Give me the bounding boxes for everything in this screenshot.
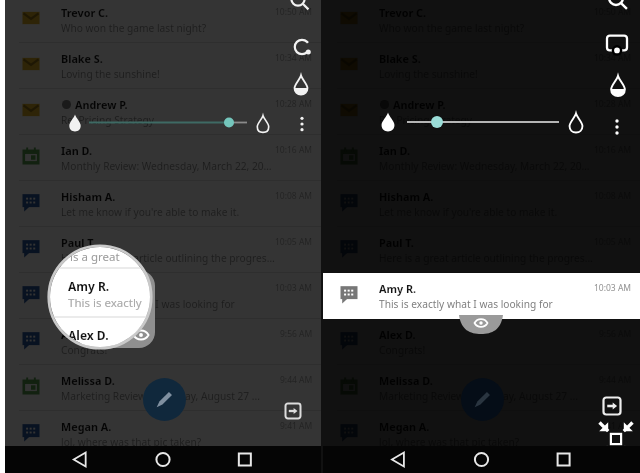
button[interactable]: Blake S.	[5, 43, 321, 89]
staticText: Alex D.	[379, 327, 416, 342]
staticText: Blake S.	[379, 51, 421, 66]
staticText: lol, where was that pic taken?	[379, 435, 520, 449]
button[interactable]: Paul T.	[5, 227, 321, 273]
staticText: 10:16 AM	[275, 144, 313, 156]
staticText: Trevor C.	[379, 5, 427, 20]
staticText: Paul T.	[379, 235, 414, 250]
staticText: Megan A.	[379, 419, 430, 434]
staticText: Re: Pricing Strategy	[379, 113, 473, 127]
button[interactable]: Compose	[461, 378, 504, 421]
staticText: This is exactly what I was looking for	[61, 297, 235, 311]
staticText: Here is a great article ou	[50, 249, 141, 265]
button[interactable]: Trevor C.	[323, 0, 640, 43]
staticText: 10:03 AM	[275, 282, 313, 294]
staticText: 9:56 AM	[280, 328, 313, 340]
staticText: 9:44 AM	[280, 374, 313, 386]
staticText: Ian D.	[61, 143, 92, 158]
staticText: lol, where was that pic taken?	[61, 435, 202, 449]
staticText: Paul T.	[61, 235, 96, 250]
button[interactable]: Melissa D.	[5, 365, 321, 411]
staticText: Let me know if you're able to make it.	[61, 205, 240, 219]
button[interactable]: Amy R.	[323, 273, 640, 319]
staticText: 10:50 AM	[275, 6, 313, 18]
staticText: Amy R.	[68, 278, 110, 294]
button[interactable]: Exit full screen	[597, 420, 635, 458]
staticText: Melissa D.	[61, 373, 115, 388]
staticText: Congrats!	[61, 343, 108, 357]
staticText: Trevor C.	[61, 5, 109, 20]
staticText: 10:50 AM	[594, 6, 632, 18]
button[interactable]: Blake S.	[323, 43, 640, 89]
button[interactable]: Alex D.	[323, 319, 640, 365]
staticText: Who won the game last night?	[61, 21, 207, 35]
staticText: 9:41 AM	[280, 420, 313, 432]
staticText: 10:05 AM	[275, 236, 313, 248]
staticText: Marketing Review: Thursday, August 27 ..…	[379, 389, 579, 403]
button[interactable]: Open	[282, 400, 304, 422]
button[interactable]: Andrew P.	[5, 89, 321, 135]
staticText: This is exactly what I was looking for	[379, 297, 553, 311]
staticText: Marketing Review: Thursday, August 27 ..…	[61, 389, 261, 403]
staticText: 9:41 AM	[599, 420, 632, 432]
staticText: Loving the sunshine!	[61, 67, 160, 81]
staticText: Alex D.	[61, 327, 98, 342]
button[interactable]: Alex D.	[5, 319, 321, 365]
staticText: Ian D.	[379, 143, 410, 158]
button[interactable]: Melissa D.	[323, 365, 640, 411]
staticText: Monthly Review: Wednesday, March 22, 201…	[61, 159, 275, 173]
staticText: Re: Pricing Strategy	[61, 113, 155, 127]
staticText: Megan A.	[61, 419, 112, 434]
button[interactable]: Ian D.	[5, 135, 321, 181]
button[interactable]: Amy R.	[5, 273, 321, 319]
staticText: This is exactly what I was lo	[68, 295, 150, 311]
staticText: Andrew P.	[75, 97, 128, 112]
staticText: 10:08 AM	[275, 190, 313, 202]
staticText: Amy R.	[61, 281, 99, 296]
staticText: Blake S.	[61, 51, 103, 66]
staticText: 10:34 AM	[275, 52, 313, 64]
staticText: Here is a great article outlining the pr…	[61, 251, 275, 265]
staticText: Hisham A.	[61, 189, 116, 204]
button[interactable]: Compose	[143, 378, 186, 421]
staticText: Andrew P.	[393, 97, 446, 112]
button[interactable]: Trevor C.	[5, 0, 321, 43]
staticText: Amy R.	[379, 281, 417, 296]
staticText: 10:03 AM	[594, 282, 632, 294]
button[interactable]: Open	[600, 394, 624, 418]
staticText: 10:28 AM	[275, 98, 313, 110]
button[interactable]: Hisham A.	[5, 181, 321, 227]
staticText: Hisham A.	[379, 189, 434, 204]
staticText: Melissa D.	[379, 373, 433, 388]
button[interactable]: Megan A.	[323, 411, 640, 457]
staticText: Alex D.	[68, 327, 109, 343]
staticText: 10:34 AM	[594, 52, 632, 64]
button[interactable]: Megan A.	[5, 411, 321, 457]
button[interactable]: Andrew P.	[323, 89, 640, 135]
